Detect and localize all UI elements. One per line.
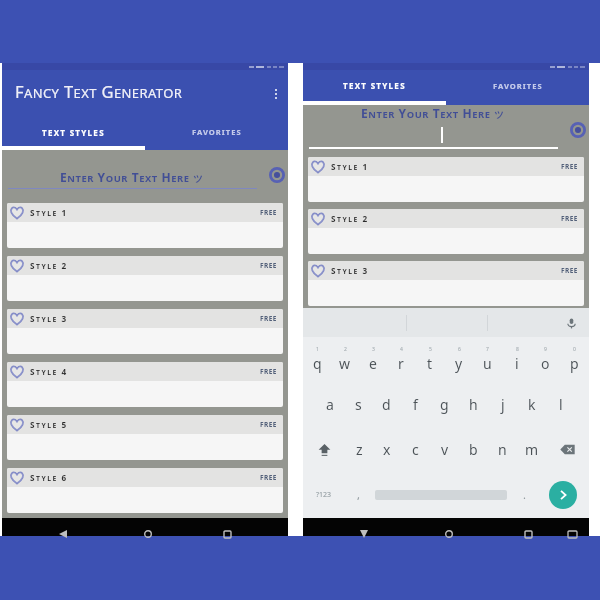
button[interactable]: Switch keyboard: [565, 531, 579, 545]
button[interactable]: STYLE 1: [308, 157, 584, 202]
button[interactable]: k: [517, 382, 546, 427]
staticText: 9: [544, 346, 547, 353]
staticText: FREE: [260, 261, 277, 270]
staticText: STYLE 2: [331, 213, 369, 224]
button[interactable]: Recents: [220, 531, 234, 545]
button[interactable]: 9: [531, 337, 560, 382]
staticText: 0: [573, 346, 576, 353]
staticText: FAVORITES: [192, 127, 242, 137]
staticText: ENTER YOUR TEXT HERE ツ: [361, 105, 505, 121]
button[interactable]: 5: [415, 337, 444, 382]
staticText: FREE: [561, 266, 578, 275]
button[interactable]: a: [316, 382, 344, 427]
staticText: STYLE 1: [331, 161, 369, 172]
button[interactable]: 0: [560, 337, 589, 382]
staticText: FREE: [260, 473, 277, 482]
button[interactable]: More options: [264, 70, 288, 118]
staticText: q: [313, 354, 322, 373]
button[interactable]: TEXT STYLES: [2, 118, 145, 146]
button[interactable]: c: [401, 427, 430, 472]
button[interactable]: FAVORITES: [446, 70, 589, 101]
button[interactable]: TEXT STYLES: [303, 70, 446, 101]
staticText: z: [356, 440, 363, 459]
staticText: FREE: [561, 214, 578, 223]
staticText: 6: [458, 346, 461, 353]
button[interactable]: Generate: [568, 120, 588, 140]
staticText: 7: [486, 346, 489, 353]
staticText: ?123: [316, 490, 332, 500]
button[interactable]: f: [401, 382, 430, 427]
button[interactable]: STYLE 1: [7, 203, 283, 248]
button[interactable]: m: [517, 427, 546, 472]
staticText: f: [413, 395, 418, 414]
staticText: m: [525, 440, 539, 459]
staticText: w: [339, 354, 351, 373]
staticText: r: [398, 354, 404, 373]
staticText: i: [515, 354, 519, 373]
staticText: d: [382, 395, 391, 414]
staticText: 2: [344, 346, 347, 353]
button[interactable]: 2: [331, 337, 359, 382]
button[interactable]: Voice input: [564, 316, 578, 330]
staticText: 8: [516, 346, 519, 353]
button[interactable]: STYLE 2: [7, 256, 283, 301]
button[interactable]: Enter: [537, 472, 589, 517]
button[interactable]: Home: [442, 530, 456, 544]
staticText: STYLE 4: [30, 366, 68, 377]
button[interactable]: 7: [473, 337, 502, 382]
button[interactable]: g: [430, 382, 459, 427]
button[interactable]: 8: [502, 337, 531, 382]
button[interactable]: d: [372, 382, 401, 427]
staticText: FAVORITES: [493, 81, 543, 91]
button[interactable]: j: [488, 382, 517, 427]
button[interactable]: 6: [444, 337, 473, 382]
button[interactable]: Generate: [267, 165, 287, 185]
staticText: FANCY TEXT GENERATOR: [15, 80, 183, 102]
staticText: FREE: [260, 314, 277, 323]
staticText: t: [427, 354, 433, 373]
staticText: ,: [357, 487, 360, 502]
button[interactable]: FAVORITES: [145, 118, 288, 146]
staticText: e: [369, 354, 377, 373]
button[interactable]: n: [488, 427, 517, 472]
button[interactable]: STYLE 6: [7, 468, 283, 513]
staticText: j: [501, 395, 505, 414]
button[interactable]: z: [345, 427, 373, 472]
button[interactable]: STYLE 3: [7, 309, 283, 354]
staticText: STYLE 6: [30, 472, 68, 483]
button[interactable]: Home: [141, 530, 155, 544]
button[interactable]: Space: [375, 472, 507, 517]
button[interactable]: Recents: [521, 531, 535, 545]
staticText: FREE: [260, 208, 277, 217]
button[interactable]: x: [373, 427, 401, 472]
button[interactable]: s: [344, 382, 372, 427]
button[interactable]: Shift: [303, 427, 345, 472]
button[interactable]: ,: [345, 472, 371, 517]
staticText: 3: [372, 346, 375, 353]
button[interactable]: STYLE 3: [308, 261, 584, 306]
staticText: a: [326, 395, 334, 414]
button[interactable]: STYLE 4: [7, 362, 283, 407]
staticText: h: [469, 395, 478, 414]
button[interactable]: Backspace: [546, 427, 589, 472]
staticText: 1: [316, 346, 319, 353]
staticText: FREE: [260, 367, 277, 376]
staticText: 4: [400, 346, 403, 353]
button[interactable]: Back: [56, 530, 70, 544]
button[interactable]: STYLE 5: [7, 415, 283, 460]
button[interactable]: v: [430, 427, 459, 472]
button[interactable]: 1: [303, 337, 331, 382]
button[interactable]: 4: [387, 337, 415, 382]
button[interactable]: b: [459, 427, 488, 472]
staticText: v: [441, 440, 449, 459]
button[interactable]: l: [546, 382, 575, 427]
button[interactable]: h: [459, 382, 488, 427]
button[interactable]: 3: [359, 337, 387, 382]
button[interactable]: Hide keyboard: [357, 530, 371, 544]
button[interactable]: STYLE 2: [308, 209, 584, 254]
button[interactable]: ?123: [303, 472, 345, 517]
staticText: 5: [429, 346, 432, 353]
staticText: k: [528, 395, 536, 414]
staticText: o: [541, 354, 550, 373]
